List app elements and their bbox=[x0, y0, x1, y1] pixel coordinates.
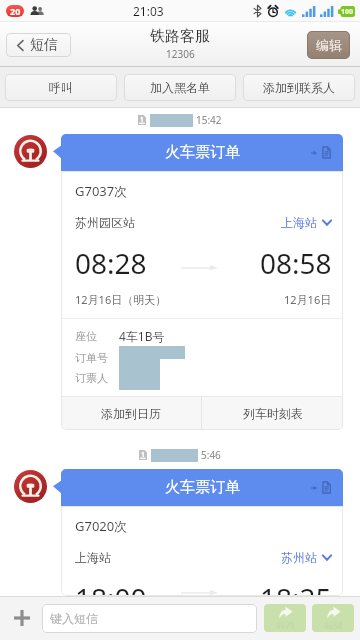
staticText: 12月16日（明天） bbox=[75, 292, 167, 307]
staticText: 苏州园区站 bbox=[75, 215, 135, 230]
staticText: 4654 bbox=[324, 620, 343, 631]
staticText: 短信 bbox=[30, 36, 58, 54]
staticText: 铁路客服 bbox=[150, 27, 210, 46]
staticText: G7037次 bbox=[75, 182, 128, 200]
staticText: 上海站 bbox=[75, 550, 111, 565]
button[interactable]: 短信 bbox=[6, 33, 71, 57]
staticText: 座位 bbox=[75, 329, 119, 343]
staticText: 5:46 bbox=[201, 448, 221, 462]
staticText: 呼叫 bbox=[49, 80, 73, 95]
button[interactable]: 呼叫 bbox=[5, 74, 117, 101]
button[interactable]: Send 4654 bbox=[312, 604, 354, 632]
staticText: 列车时刻表 bbox=[243, 406, 303, 421]
staticText: 苏州站 bbox=[281, 550, 317, 565]
staticText: 添加到日历 bbox=[101, 406, 161, 421]
staticText: 08:58 bbox=[260, 244, 332, 282]
staticText: 12306 bbox=[166, 47, 195, 61]
button[interactable]: 添加到日历 bbox=[61, 397, 201, 430]
staticText: 上海站 bbox=[281, 215, 317, 230]
button[interactable]: 加入黑名单 bbox=[124, 74, 236, 101]
staticText: 18:00 bbox=[75, 579, 147, 596]
button[interactable]: 列车时刻表 bbox=[202, 397, 343, 430]
staticText: 100 bbox=[341, 7, 354, 17]
staticText: G7020次 bbox=[75, 517, 128, 535]
staticText: 08:28 bbox=[75, 244, 147, 282]
staticText: 20 bbox=[10, 5, 21, 17]
button[interactable]: 编辑 bbox=[307, 31, 350, 59]
staticText: 4车1B号 bbox=[119, 328, 165, 344]
staticText: 火车票订单 bbox=[165, 143, 240, 162]
staticText: 添加到联系人 bbox=[263, 80, 335, 95]
staticText: 火车票订单 bbox=[165, 478, 240, 497]
staticText: 15:42 bbox=[196, 113, 222, 127]
staticText: 订票人 bbox=[75, 371, 119, 385]
staticText: 键入短信 bbox=[50, 611, 98, 626]
button[interactable]: 添加到联系人 bbox=[243, 74, 355, 101]
staticText: 18:25 bbox=[260, 579, 332, 596]
staticText: 编辑 bbox=[316, 37, 342, 53]
staticText: 订单号 bbox=[75, 351, 119, 365]
staticText: 9179 bbox=[276, 620, 295, 631]
staticText: 12月16日 bbox=[284, 292, 332, 307]
button[interactable]: 键入短信 bbox=[42, 604, 257, 633]
button[interactable]: Add attachment bbox=[10, 606, 34, 630]
staticText: 加入黑名单 bbox=[150, 80, 210, 95]
button[interactable]: Send 9179 bbox=[264, 604, 306, 632]
button[interactable]: 火车票订单 bbox=[61, 134, 343, 171]
staticText: 21:03 bbox=[133, 3, 164, 19]
button[interactable]: 火车票订单 bbox=[61, 469, 343, 506]
